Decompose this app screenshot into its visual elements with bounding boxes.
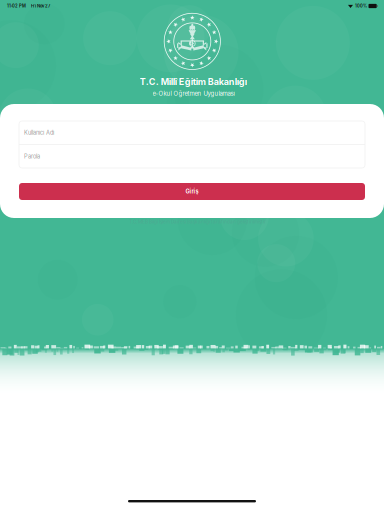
staticText: T.C. Millî Eğitim Bakanlığı: [140, 76, 247, 87]
staticText: Giriş: [185, 188, 198, 195]
staticText: e-Okul Öğretmen Uygulaması: [152, 90, 234, 97]
staticText: Parola: [24, 153, 40, 160]
staticText: Kullanıcı Adı: [24, 129, 54, 136]
staticText: Fri Nov 27: [31, 3, 50, 8]
staticText: 100%: [355, 3, 367, 8]
button[interactable]: Giriş: [19, 183, 365, 200]
staticText: 11:02 PM: [7, 3, 26, 8]
